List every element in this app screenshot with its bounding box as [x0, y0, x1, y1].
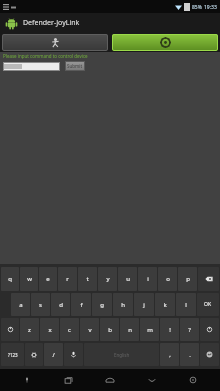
- button[interactable]: n: [120, 318, 139, 341]
- staticText: ,: [169, 351, 171, 359]
- staticText: d: [59, 301, 63, 309]
- staticText: /: [52, 351, 55, 359]
- button[interactable]: p: [178, 267, 197, 291]
- button[interactable]: i: [138, 267, 157, 291]
- button[interactable]: Input settings: [25, 343, 43, 366]
- button[interactable]: d: [51, 293, 70, 316]
- button[interactable]: v: [80, 318, 99, 341]
- staticText: y: [106, 275, 110, 283]
- button[interactable]: b: [100, 318, 119, 341]
- staticText: o: [166, 275, 170, 283]
- staticText: t: [86, 275, 89, 283]
- staticText: v: [88, 326, 92, 334]
- staticText: c: [68, 326, 71, 334]
- button[interactable]: Symbols: [1, 343, 24, 366]
- staticText: w: [27, 275, 32, 283]
- button[interactable]: Screenshot: [178, 369, 208, 391]
- button[interactable]: h: [113, 293, 133, 316]
- button[interactable]: ,: [160, 343, 179, 366]
- button[interactable]: s: [31, 293, 50, 316]
- staticText: l: [185, 301, 187, 309]
- staticText: ?123: [8, 352, 18, 358]
- button[interactable]: f: [71, 293, 91, 316]
- staticText: OK: [204, 301, 212, 308]
- button[interactable]: c: [60, 318, 79, 341]
- staticText: f: [80, 301, 83, 309]
- button[interactable]: Recents: [53, 369, 83, 391]
- button[interactable]: Home: [95, 369, 125, 391]
- button[interactable]: Space: [84, 343, 159, 366]
- button[interactable]: u: [118, 267, 137, 291]
- button[interactable]: g: [92, 293, 112, 316]
- button[interactable]: Shift: [200, 318, 219, 341]
- button[interactable]: t: [78, 267, 97, 291]
- button[interactable]: x: [40, 318, 59, 341]
- staticText: z: [28, 326, 31, 334]
- button[interactable]: .: [180, 343, 199, 366]
- button[interactable]: Submit: [65, 61, 85, 71]
- staticText: b: [108, 326, 112, 334]
- button[interactable]: OK: [197, 293, 219, 316]
- staticText: h: [121, 301, 125, 309]
- button[interactable]: q: [1, 267, 19, 291]
- button[interactable]: Settings tab: [112, 34, 218, 51]
- staticText: English: [114, 352, 130, 358]
- staticText: !: [169, 326, 171, 334]
- staticText: g: [100, 301, 104, 309]
- button[interactable]: Shift: [1, 318, 19, 341]
- button[interactable]: Backspace: [198, 267, 219, 291]
- button[interactable]: r: [58, 267, 77, 291]
- staticText: Please input command to control device: [3, 53, 88, 59]
- button[interactable]: Device tab: [2, 34, 108, 51]
- button[interactable]: o: [158, 267, 177, 291]
- button[interactable]: Enter: [200, 343, 219, 366]
- button[interactable]: j: [134, 293, 154, 316]
- button[interactable]: ?: [180, 318, 199, 341]
- button[interactable]: !: [160, 318, 179, 341]
- button[interactable]: w: [20, 267, 38, 291]
- staticText: s: [39, 301, 42, 309]
- button[interactable]: Back: [137, 369, 167, 391]
- button[interactable]: [3, 62, 60, 71]
- staticText: 19:33: [204, 4, 217, 11]
- staticText: a: [19, 301, 23, 309]
- staticText: n: [128, 326, 132, 334]
- button[interactable]: k: [155, 293, 175, 316]
- button[interactable]: z: [20, 318, 39, 341]
- button[interactable]: Voice input: [64, 343, 83, 366]
- staticText: u: [126, 275, 130, 283]
- button[interactable]: y: [98, 267, 117, 291]
- staticText: r: [66, 275, 69, 283]
- staticText: i: [147, 275, 149, 283]
- staticText: Defender-JoyLink: [23, 18, 80, 28]
- staticText: x: [48, 326, 52, 334]
- button[interactable]: Voice search: [12, 369, 42, 391]
- staticText: q: [8, 275, 12, 283]
- button[interactable]: /: [44, 343, 63, 366]
- staticText: Submit: [67, 63, 83, 69]
- staticText: k: [163, 301, 167, 309]
- button[interactable]: e: [39, 267, 57, 291]
- staticText: j: [143, 301, 145, 309]
- staticText: 85%: [192, 4, 202, 11]
- staticText: .: [189, 351, 191, 359]
- staticText: p: [186, 275, 190, 283]
- button[interactable]: l: [176, 293, 196, 316]
- staticText: m: [147, 326, 153, 334]
- staticText: ?: [188, 326, 191, 334]
- button[interactable]: a: [11, 293, 30, 316]
- button[interactable]: m: [140, 318, 159, 341]
- staticText: e: [46, 275, 50, 283]
